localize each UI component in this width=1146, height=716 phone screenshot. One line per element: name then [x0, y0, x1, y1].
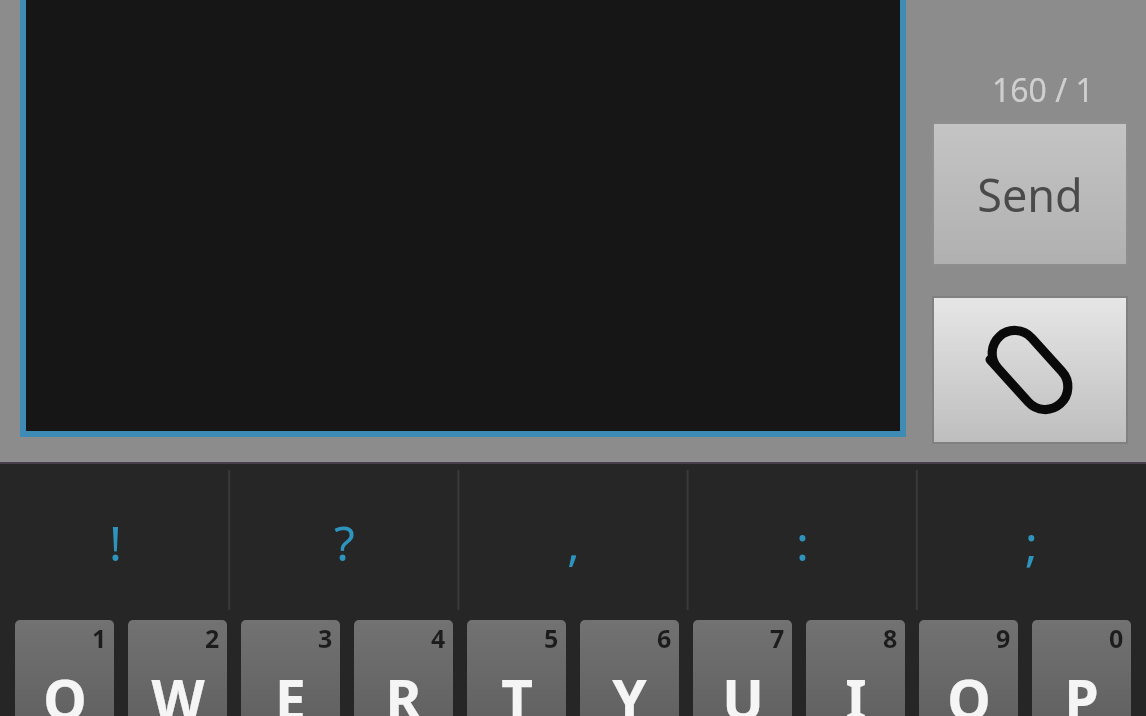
button[interactable]: ! [0, 464, 230, 620]
staticText: P [1064, 661, 1099, 716]
staticText: W [151, 661, 205, 716]
staticText: Q [43, 661, 87, 716]
staticText: 1 [92, 621, 107, 655]
staticText: 5 [544, 621, 559, 655]
staticText: 9 [996, 621, 1011, 655]
button[interactable]: 5 [467, 620, 566, 716]
staticText: 3 [318, 621, 333, 655]
staticText: : [796, 510, 809, 575]
staticText: 4 [431, 621, 446, 655]
staticText: R [385, 661, 422, 716]
button[interactable]: Send [934, 124, 1126, 264]
button[interactable]: : [688, 464, 917, 620]
staticText: 2 [205, 621, 220, 655]
staticText: I [845, 661, 867, 716]
staticText: U [722, 661, 764, 716]
button[interactable]: Attach file [934, 298, 1126, 442]
staticText: ; [1025, 510, 1038, 575]
staticText: 7 [770, 621, 785, 655]
staticText: 0 [1109, 621, 1124, 655]
staticText: ? [334, 510, 355, 575]
staticText: T [501, 661, 533, 716]
staticText: 6 [657, 621, 672, 655]
button[interactable]: 7 [693, 620, 792, 716]
button[interactable]: ; [917, 464, 1146, 620]
button[interactable]: 0 [1032, 620, 1131, 716]
button[interactable]: 9 [919, 620, 1018, 716]
button[interactable]: ? [230, 464, 459, 620]
staticText: 8 [883, 621, 898, 655]
button[interactable]: 3 [241, 620, 340, 716]
button[interactable]: , [459, 464, 688, 620]
staticText: E [275, 661, 306, 716]
staticText: O [947, 661, 991, 716]
button[interactable]: 8 [806, 620, 905, 716]
button[interactable]: 1 [15, 620, 114, 716]
staticText: ! [109, 510, 122, 575]
staticText: Send [977, 164, 1083, 225]
button[interactable]: 2 [128, 620, 227, 716]
staticText: , [567, 510, 580, 575]
button[interactable]: 4 [354, 620, 453, 716]
staticText: 160 / 1 [992, 68, 1094, 112]
button[interactable]: 6 [580, 620, 679, 716]
staticText: Y [612, 661, 647, 716]
